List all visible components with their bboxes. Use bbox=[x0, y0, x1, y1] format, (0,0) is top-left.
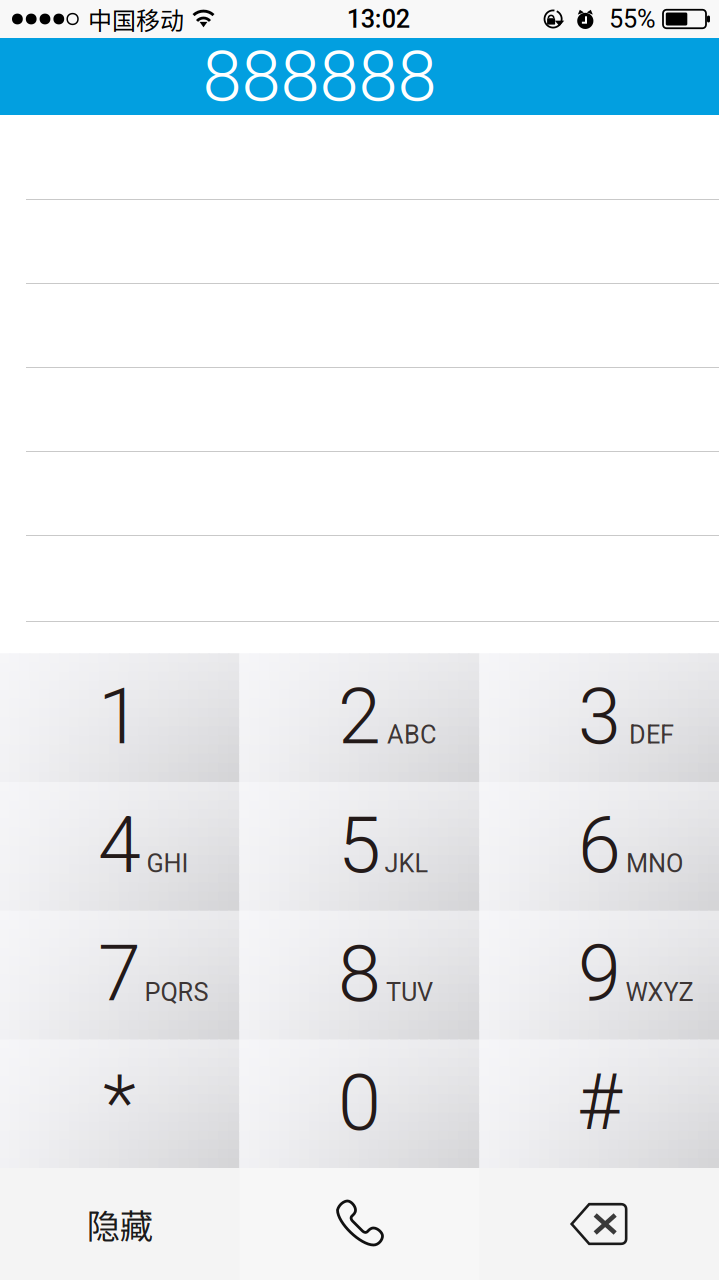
staticText: 13:02 bbox=[347, 4, 410, 34]
staticText: 5 bbox=[338, 800, 381, 891]
button[interactable]: 5 bbox=[240, 783, 479, 911]
staticText: # bbox=[577, 1058, 622, 1148]
staticText: MNO bbox=[626, 849, 683, 878]
button[interactable]: 7 bbox=[0, 911, 239, 1039]
button[interactable]: 3 bbox=[480, 654, 719, 782]
button[interactable]: 2 bbox=[240, 654, 479, 782]
staticText: 6 bbox=[578, 800, 621, 891]
staticText: 55% bbox=[609, 4, 656, 34]
staticText: GHI bbox=[146, 849, 188, 878]
staticText: 3 bbox=[578, 672, 621, 762]
staticText: ABC bbox=[387, 720, 436, 750]
staticText: WXYZ bbox=[625, 977, 693, 1007]
staticText: * bbox=[103, 1058, 136, 1148]
staticText: 888888 bbox=[202, 35, 436, 118]
staticText: 0 bbox=[338, 1058, 381, 1148]
staticText: 隐藏 bbox=[87, 1200, 153, 1248]
staticText: 8 bbox=[338, 929, 381, 1020]
button[interactable]: 8 bbox=[240, 911, 479, 1039]
button[interactable]: # bbox=[480, 1040, 719, 1168]
button[interactable]: Call bbox=[240, 1168, 479, 1280]
button[interactable]: Delete bbox=[479, 1168, 719, 1280]
staticText: 中国移动 bbox=[88, 2, 184, 36]
staticText: 9 bbox=[578, 929, 621, 1020]
button[interactable]: 0 bbox=[240, 1040, 479, 1168]
button[interactable]: 4 bbox=[0, 783, 239, 911]
staticText: TUV bbox=[386, 977, 433, 1007]
staticText: DEF bbox=[629, 720, 674, 750]
staticText: 2 bbox=[338, 672, 381, 762]
staticText: 1 bbox=[98, 672, 141, 762]
staticText: 7 bbox=[98, 929, 141, 1020]
staticText: JKL bbox=[384, 849, 428, 878]
button[interactable]: 6 bbox=[480, 783, 719, 911]
button[interactable]: 1 bbox=[0, 654, 239, 782]
staticText: 4 bbox=[98, 800, 141, 891]
button[interactable]: 9 bbox=[480, 911, 719, 1039]
button[interactable]: * bbox=[0, 1040, 239, 1168]
staticText: PQRS bbox=[144, 977, 208, 1007]
button[interactable]: 隐藏 bbox=[0, 1168, 240, 1280]
